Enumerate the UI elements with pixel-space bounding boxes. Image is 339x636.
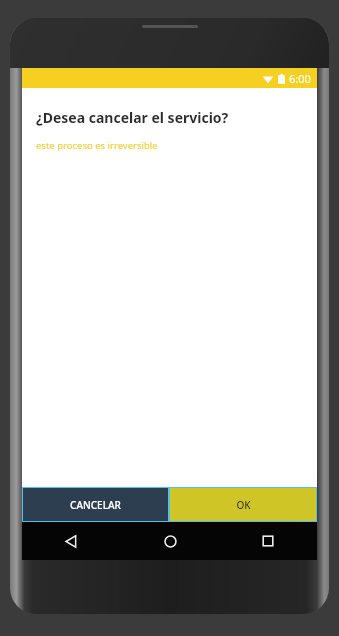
button[interactable]: Recent apps: [219, 522, 317, 560]
staticText: CANCELAR: [70, 498, 121, 512]
button[interactable]: CANCELAR: [22, 487, 169, 522]
button[interactable]: Home: [121, 522, 219, 560]
button[interactable]: Back: [22, 522, 121, 560]
staticText: ¿Desea cancelar el servicio?: [36, 108, 229, 127]
button[interactable]: OK: [169, 487, 317, 522]
staticText: OK: [236, 498, 251, 512]
staticText: este proceso es irreversible: [36, 139, 158, 152]
staticText: 6:00: [289, 71, 311, 86]
